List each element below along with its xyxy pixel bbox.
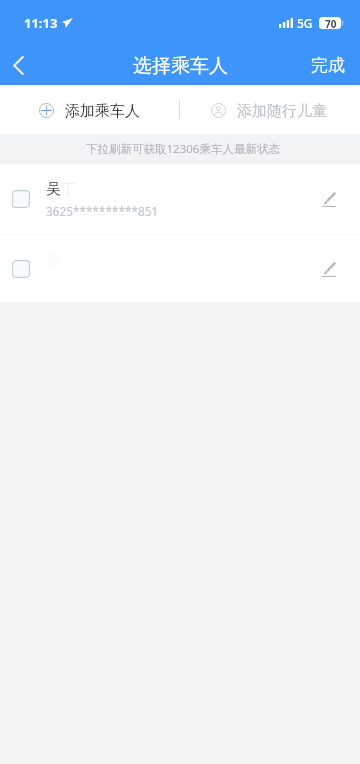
- staticText: 选择乘车人: [133, 54, 228, 78]
- staticText: 吴: [46, 180, 61, 199]
- staticText: 完成: [311, 55, 345, 76]
- button[interactable]: Select passenger: [0, 235, 360, 302]
- staticText: 70: [325, 17, 337, 29]
- button[interactable]: Edit: [309, 179, 349, 219]
- button[interactable]: 添加乘车人: [0, 85, 179, 134]
- button[interactable]: 添加随行儿童: [180, 85, 360, 134]
- button[interactable]: Select passenger: [0, 164, 360, 234]
- button[interactable]: Back: [0, 46, 37, 85]
- staticText: 11:13: [24, 14, 58, 32]
- staticText: 5G: [297, 15, 313, 31]
- staticText: 丁: [61, 180, 76, 199]
- staticText: 添加随行儿童: [237, 102, 327, 121]
- staticText: 3625**********851: [46, 203, 159, 219]
- staticText: 添加乘车人: [65, 102, 140, 121]
- staticText: 下拉刷新可获取12306乘车人最新状态: [86, 141, 280, 157]
- button[interactable]: Select passenger: [12, 190, 30, 208]
- button[interactable]: Select passenger: [12, 260, 30, 278]
- button[interactable]: 完成: [295, 46, 360, 85]
- button[interactable]: Edit: [309, 249, 349, 289]
